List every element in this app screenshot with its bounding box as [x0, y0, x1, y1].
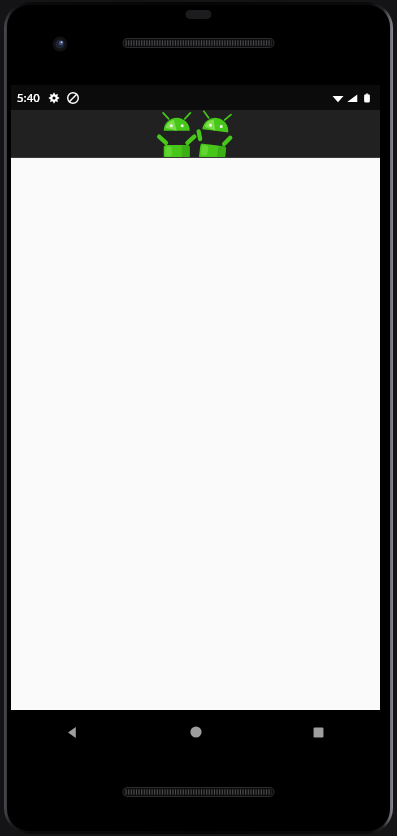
button[interactable]: Android mascots [11, 110, 380, 158]
button[interactable]: Recent apps [257, 710, 380, 754]
staticText: 5:40 [17, 90, 40, 106]
button[interactable]: Back [11, 710, 134, 754]
button[interactable]: Home [134, 710, 257, 754]
